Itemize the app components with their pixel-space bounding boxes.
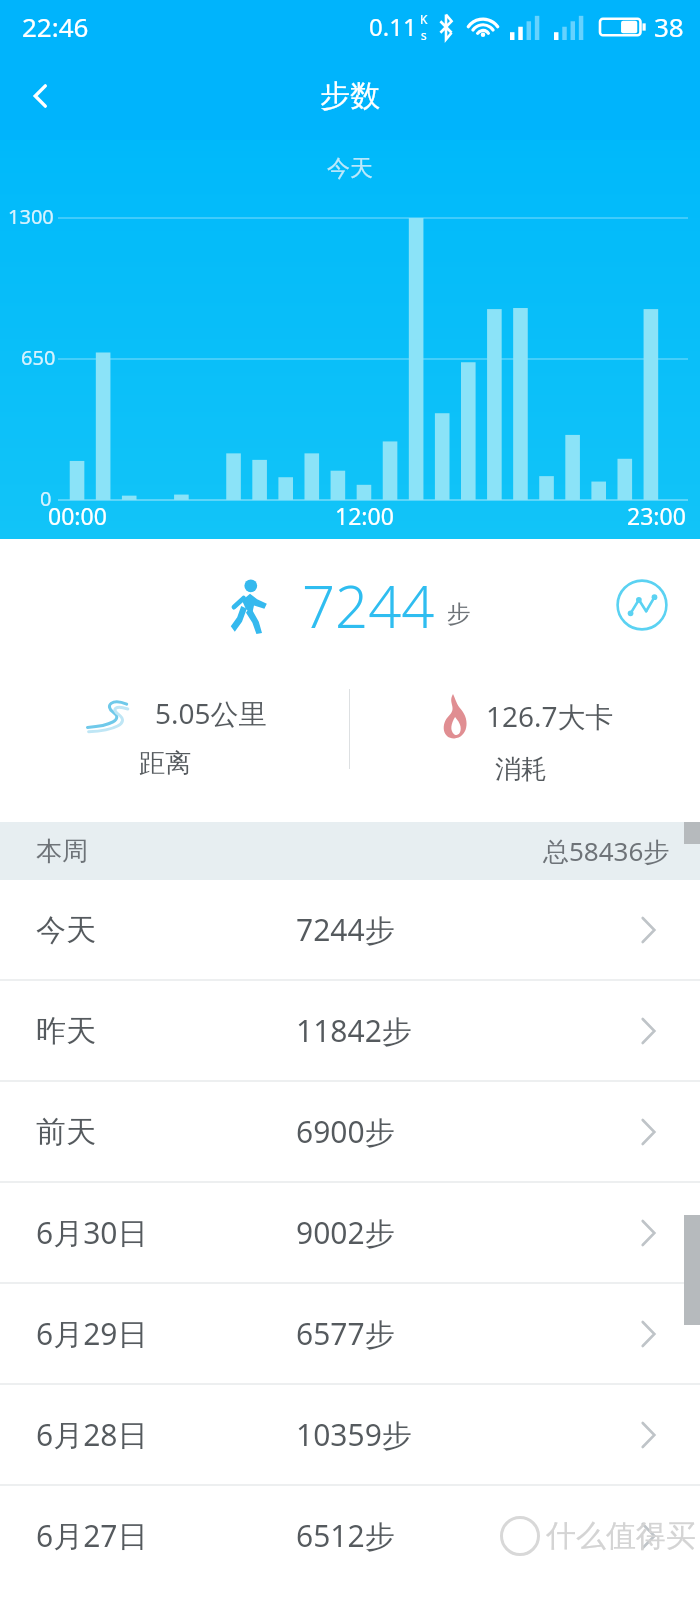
staticText: s [421,27,427,43]
staticText: 9002步 [296,1212,395,1253]
button[interactable]: 6月27日 [0,1486,700,1585]
staticText: 距离 [139,747,191,780]
staticText: 6月28日 [36,1414,148,1455]
button[interactable]: 6月28日 [0,1385,700,1484]
staticText: 0.11 [369,10,417,43]
staticText: 今天 [36,911,96,949]
staticText: 什么值得买 [546,1517,696,1555]
button[interactable]: Trend chart [614,577,670,633]
button[interactable]: Back [14,69,68,123]
staticText: 步数 [320,77,380,115]
staticText: 7244步 [296,909,395,950]
staticText: 6577步 [296,1313,395,1354]
button[interactable]: 前天 [0,1082,700,1181]
staticText: 昨天 [36,1012,96,1050]
staticText: 1300 [8,203,54,230]
staticText: 步 [447,599,471,629]
button[interactable]: 今天 [0,880,700,979]
staticText: 6900步 [296,1111,395,1152]
staticText: 0 [40,485,52,512]
staticText: 38 [654,9,684,44]
staticText: 126.7大卡 [486,697,614,735]
staticText: 00:00 [48,500,107,531]
staticText: 6月27日 [36,1515,148,1556]
staticText: 今天 [327,154,373,183]
button[interactable]: 6月29日 [0,1284,700,1383]
staticText: 6月30日 [36,1212,148,1253]
staticText: 7244 [302,566,435,645]
button[interactable]: 6月30日 [0,1183,700,1282]
staticText: 12:00 [335,500,394,531]
staticText: 5.05公里 [155,694,267,732]
staticText: 6512步 [296,1515,395,1556]
staticText: 本周 [36,835,88,868]
staticText: 10359步 [296,1414,412,1455]
staticText: 6月29日 [36,1313,148,1354]
staticText: 11842步 [296,1010,412,1051]
button[interactable]: 昨天 [0,981,700,1080]
staticText: 650 [21,344,56,371]
staticText: 前天 [36,1113,96,1151]
staticText: K [420,11,428,27]
staticText: 消耗 [495,753,547,786]
staticText: 22:46 [22,9,89,44]
staticText: 总58436步 [543,833,670,869]
staticText: 23:00 [627,500,686,531]
